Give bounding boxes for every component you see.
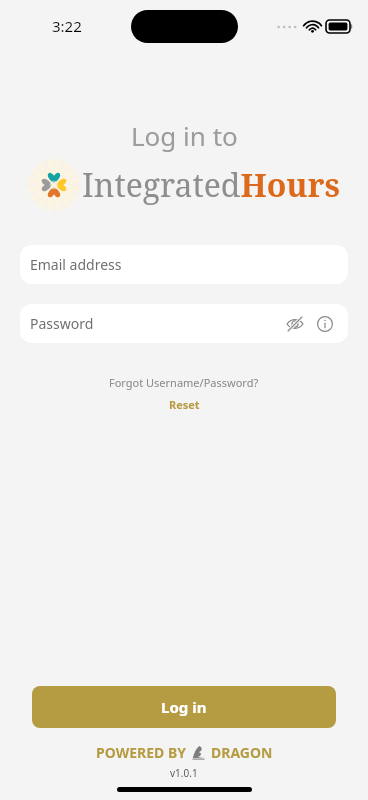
staticText: DRAGON <box>211 743 273 762</box>
staticText: Password <box>30 314 282 333</box>
button[interactable]: Show password <box>282 311 308 337</box>
staticText: Email address <box>30 255 338 274</box>
staticText: IntegratedHours <box>82 163 340 207</box>
staticText: POWERED BY <box>96 743 186 762</box>
staticText: Log in to <box>131 118 238 153</box>
button[interactable]: Password info <box>312 311 338 337</box>
staticText: Forgot Username/Password? <box>109 375 259 390</box>
staticText: v1.0.1 <box>170 766 198 780</box>
button[interactable]: Email address <box>20 245 348 284</box>
button[interactable]: Password <box>20 304 348 343</box>
staticText: Reset <box>169 397 200 412</box>
button[interactable]: Log in <box>32 686 336 728</box>
staticText: 3:22 <box>52 16 82 36</box>
staticText: Log in <box>161 697 207 717</box>
button[interactable]: Reset <box>161 395 208 414</box>
